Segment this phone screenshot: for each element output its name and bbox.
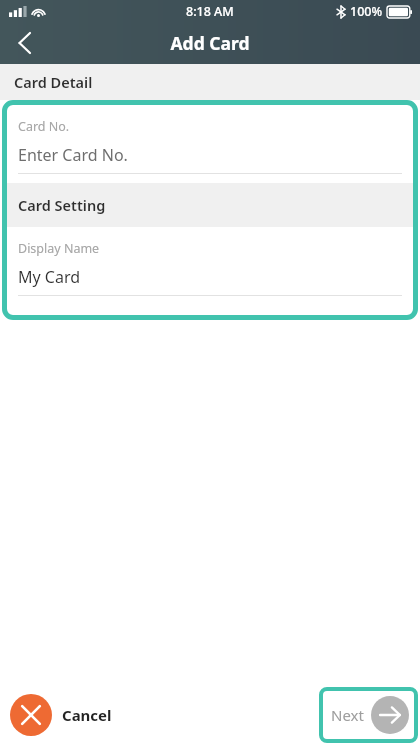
staticText: Add Card	[170, 31, 250, 55]
staticText: 100%	[350, 3, 383, 20]
button[interactable]: Next	[319, 687, 418, 743]
button[interactable]: Cancel	[10, 694, 120, 736]
staticText: Display Name	[18, 240, 100, 257]
staticText: Cancel	[62, 705, 112, 725]
staticText: My Card	[18, 266, 81, 288]
staticText: Next	[331, 705, 364, 725]
button[interactable]: Display Name	[7, 227, 413, 305]
staticText: Enter Card No.	[18, 144, 128, 166]
button[interactable]: Card No.	[7, 105, 413, 183]
staticText: Card Setting	[18, 195, 106, 215]
button[interactable]: Back	[0, 22, 48, 64]
staticText: Card No.	[18, 118, 70, 135]
staticText: Card Detail	[14, 72, 93, 92]
staticText: 8:18 AM	[186, 3, 234, 20]
